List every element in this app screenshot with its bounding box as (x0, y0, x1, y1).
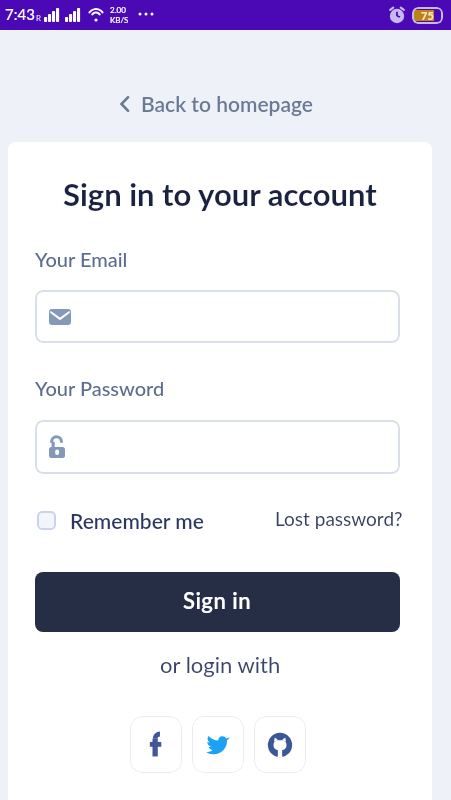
button[interactable]: Sign in (35, 572, 400, 632)
staticText: Back to homepage (141, 91, 313, 116)
button[interactable]: Lost password? (275, 507, 403, 530)
button[interactable] (192, 716, 244, 773)
staticText: 7:43 (5, 5, 35, 23)
button[interactable] (35, 290, 400, 343)
staticText: 2.00 (110, 5, 126, 15)
button[interactable]: Remember me (37, 508, 204, 533)
staticText: or login with (160, 651, 281, 677)
staticText: Your Email (35, 247, 128, 271)
button[interactable]: Back to homepage (118, 91, 313, 116)
staticText: 75 (421, 9, 434, 22)
button[interactable] (130, 716, 182, 773)
button[interactable] (35, 420, 400, 474)
staticText: KB/S (110, 15, 129, 25)
staticText: Sign in (183, 587, 252, 613)
staticText: Lost password? (275, 507, 403, 530)
button[interactable] (254, 716, 306, 773)
staticText: Remember me (70, 508, 204, 533)
staticText: Your Password (35, 376, 165, 400)
staticText: Sign in to your account (63, 175, 377, 212)
staticText: R (36, 13, 42, 23)
